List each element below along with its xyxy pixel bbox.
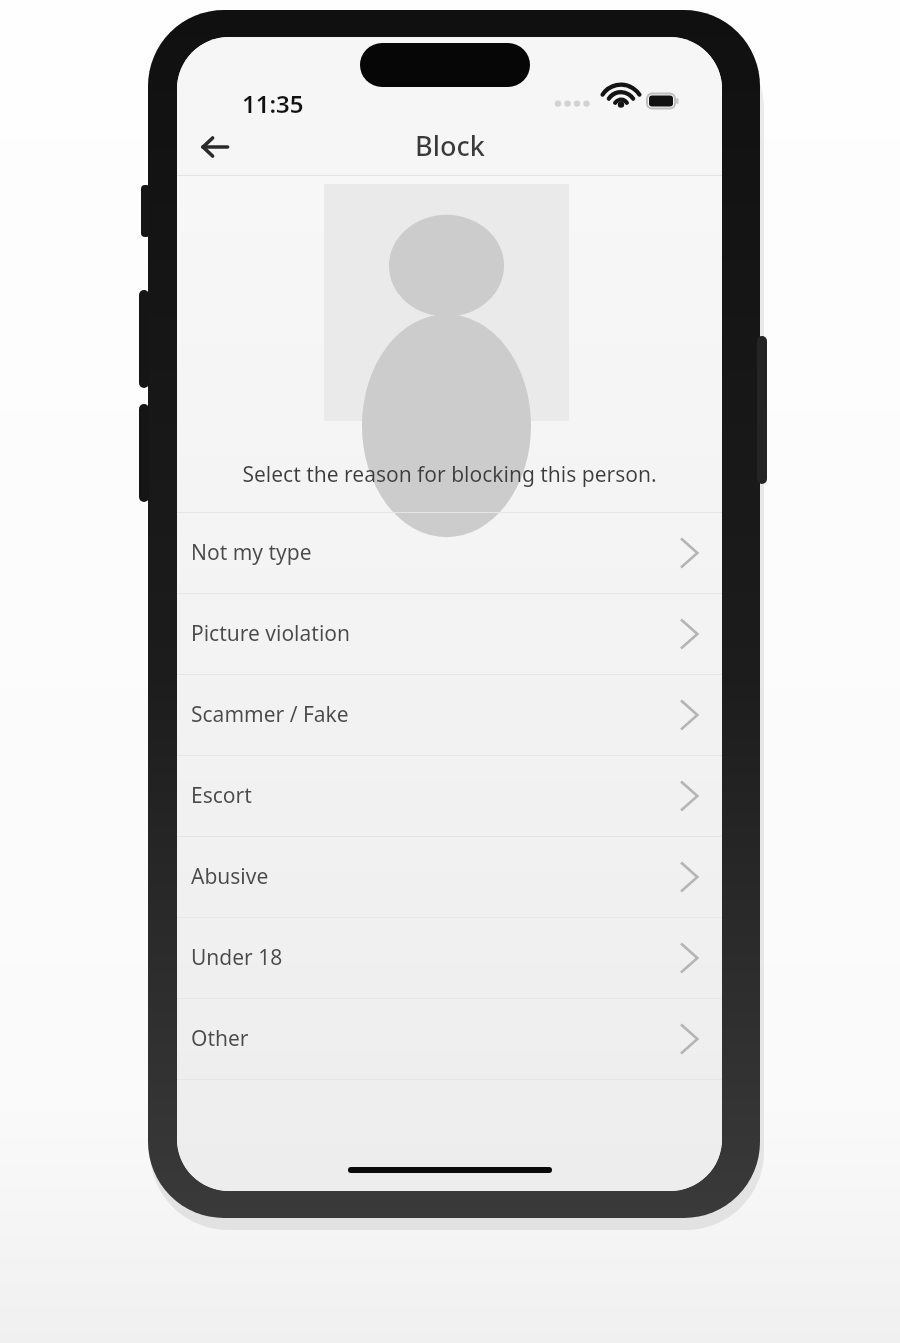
staticText: Escort [191, 781, 252, 810]
button[interactable]: Escort [177, 755, 722, 836]
staticText: Other [191, 1024, 249, 1053]
button[interactable]: Back [187, 119, 243, 175]
staticText: Not my type [191, 538, 312, 567]
staticText: Block [415, 127, 485, 164]
staticText: Under 18 [191, 943, 283, 972]
button[interactable]: Abusive [177, 836, 722, 917]
staticText: Select the reason for blocking this pers… [242, 460, 657, 489]
staticText: Abusive [191, 862, 269, 891]
button[interactable]: Other [177, 998, 722, 1079]
button[interactable]: Not my type [177, 512, 722, 593]
button[interactable]: Picture violation [177, 593, 722, 674]
button[interactable]: Scammer / Fake [177, 674, 722, 755]
staticText: Picture violation [191, 619, 350, 648]
staticText: Scammer / Fake [191, 700, 349, 729]
button[interactable]: Under 18 [177, 917, 722, 998]
staticText: 11:35 [242, 87, 304, 120]
